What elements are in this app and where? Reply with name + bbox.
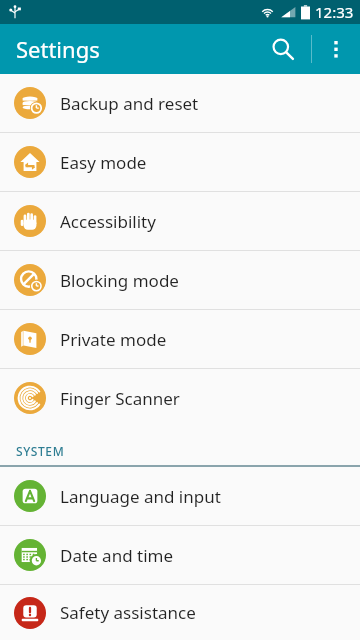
staticText: Blocking mode xyxy=(60,269,179,292)
staticText: Language and input xyxy=(60,485,221,508)
button[interactable]: More options xyxy=(312,24,360,74)
button[interactable]: Finger Scanner xyxy=(0,369,360,427)
staticText: Backup and reset xyxy=(60,92,199,115)
staticText: 12:33 xyxy=(315,2,354,22)
staticText: Safety assistance xyxy=(60,601,196,624)
button[interactable]: Safety assistance xyxy=(0,585,360,640)
button[interactable]: Private mode xyxy=(0,310,360,368)
staticText: Accessibility xyxy=(60,210,156,233)
staticText: Private mode xyxy=(60,328,167,351)
button[interactable]: Date and time xyxy=(0,526,360,584)
button[interactable]: Accessibility xyxy=(0,192,360,250)
button[interactable]: Search xyxy=(255,24,311,74)
staticText: Date and time xyxy=(60,544,174,567)
button[interactable]: Easy mode xyxy=(0,133,360,191)
button[interactable]: Language and input xyxy=(0,467,360,525)
staticText: Easy mode xyxy=(60,151,147,174)
staticText: SYSTEM xyxy=(16,443,65,459)
staticText: Settings xyxy=(16,34,100,64)
staticText: Finger Scanner xyxy=(60,387,180,410)
button[interactable]: Blocking mode xyxy=(0,251,360,309)
button[interactable]: Backup and reset xyxy=(0,74,360,132)
